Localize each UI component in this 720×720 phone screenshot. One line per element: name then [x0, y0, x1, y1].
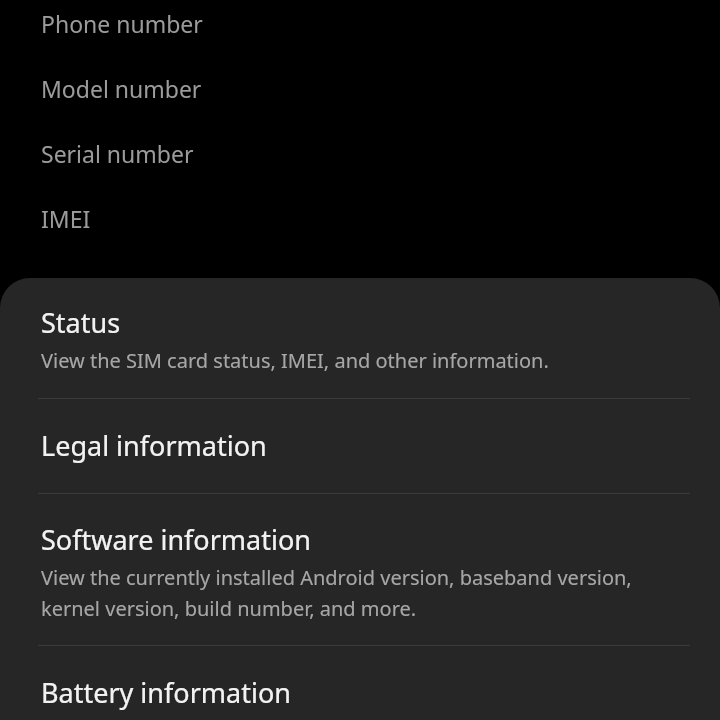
- staticText: Phone number: [41, 8, 203, 39]
- button[interactable]: Model number: [0, 56, 720, 121]
- staticText: Model number: [41, 73, 202, 104]
- button[interactable]: IMEI: [0, 186, 720, 251]
- staticText: Battery information: [41, 674, 291, 711]
- staticText: Legal information: [41, 427, 267, 464]
- button[interactable]: Status: [0, 278, 720, 398]
- button[interactable]: Legal information: [0, 399, 720, 493]
- button[interactable]: Software information: [0, 494, 720, 645]
- button[interactable]: Serial number: [0, 121, 720, 186]
- staticText: Software information: [41, 521, 311, 558]
- staticText: View the currently installed Android ver…: [41, 564, 684, 621]
- button[interactable]: Phone number: [0, 0, 720, 56]
- staticText: View the SIM card status, IMEI, and othe…: [41, 347, 549, 374]
- staticText: IMEI: [41, 203, 91, 234]
- staticText: Status: [41, 304, 121, 341]
- staticText: Serial number: [41, 138, 194, 169]
- button[interactable]: Battery information: [0, 646, 720, 720]
